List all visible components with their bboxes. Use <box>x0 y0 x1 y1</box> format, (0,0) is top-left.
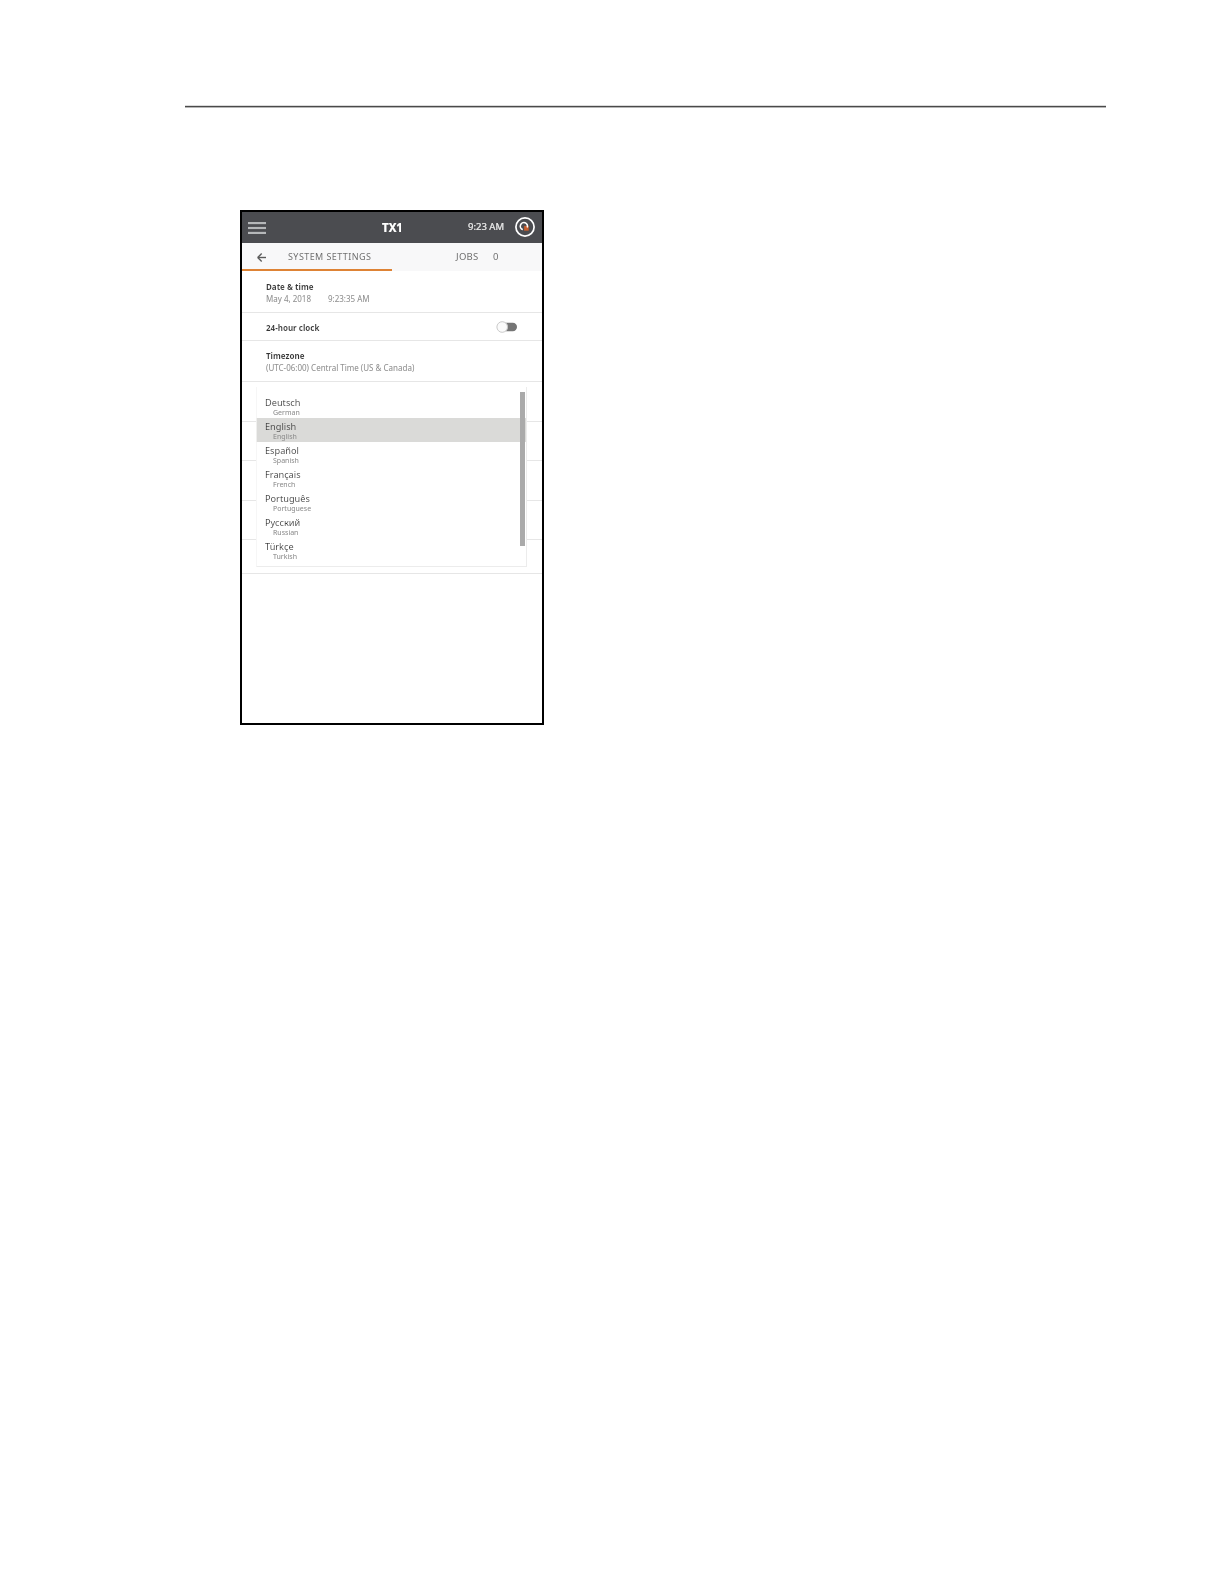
button[interactable]: English <box>256 418 527 442</box>
staticText: 0 <box>493 250 499 263</box>
staticText: English <box>265 420 297 433</box>
button[interactable]: Русский <box>256 514 527 538</box>
staticText: Русский <box>265 516 301 529</box>
staticText: Turkish <box>273 552 297 562</box>
button[interactable] <box>242 382 542 421</box>
staticText: Português <box>265 492 310 505</box>
button[interactable]: Español <box>256 442 527 466</box>
staticText: 24-hour clock <box>266 322 320 333</box>
staticText: SYSTEM SETTINGS <box>288 250 372 262</box>
staticText: (UTC-06:00) Central Time (US & Canada) <box>266 362 415 373</box>
button[interactable]: Timezone <box>242 341 542 381</box>
staticText: JOBS <box>456 250 479 263</box>
staticText: Spanish <box>273 456 299 466</box>
staticText: Türkçe <box>265 540 294 553</box>
staticText: English <box>273 432 297 442</box>
button[interactable]: Deutsch <box>256 394 527 418</box>
staticText: 9:23:35 AM <box>328 293 370 304</box>
staticText: Russian <box>273 528 299 538</box>
staticText: 9:23 AM <box>468 220 505 233</box>
staticText: Timezone <box>266 350 305 361</box>
button[interactable] <box>242 461 542 500</box>
button[interactable]: 24-hour clock <box>242 313 542 340</box>
button[interactable]: Português <box>256 490 527 514</box>
staticText: Français <box>265 468 301 481</box>
staticText: Español <box>265 444 299 457</box>
staticText: French <box>273 480 296 490</box>
button[interactable]: Menu <box>244 215 270 240</box>
staticText: Deutsch <box>265 396 301 409</box>
button[interactable] <box>242 540 542 573</box>
staticText: Portuguese <box>273 504 312 514</box>
button[interactable]: SYSTEM SETTINGS <box>242 243 392 271</box>
staticText: Date & time <box>266 281 314 292</box>
button[interactable]: العربية <box>256 562 527 567</box>
button[interactable]: Account <box>514 216 536 238</box>
staticText: TX1 <box>382 220 403 236</box>
button[interactable]: Français <box>256 466 527 490</box>
button[interactable]: Date & time <box>242 271 542 312</box>
staticText: May 4, 2018 <box>266 293 312 304</box>
button[interactable]: Türkçe <box>256 538 527 562</box>
staticText: German <box>273 408 300 418</box>
button[interactable] <box>242 422 542 460</box>
button[interactable]: JOBS <box>392 243 542 271</box>
button[interactable] <box>242 501 542 539</box>
staticText: العربية <box>265 564 291 567</box>
